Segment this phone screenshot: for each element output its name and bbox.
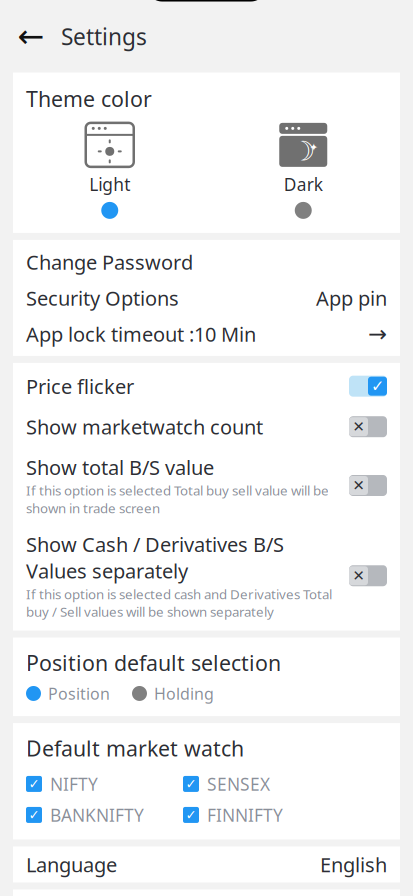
staticText: ✦	[309, 141, 318, 153]
button[interactable]: ✓	[26, 803, 183, 826]
staticText: If this option is selected cash and Deri…	[26, 585, 332, 620]
button[interactable]: ✓	[183, 772, 340, 795]
button[interactable]: Price flicker	[13, 366, 400, 406]
staticText: Show Cash / Derivatives B/S Values separ…	[26, 531, 284, 584]
staticText: ✕	[352, 477, 364, 494]
staticText: ✕	[352, 567, 364, 584]
staticText: Theme color	[26, 84, 152, 113]
button[interactable]: Position	[26, 683, 110, 704]
staticText: ✓	[371, 377, 384, 395]
staticText: NIFTY	[50, 772, 98, 795]
staticText: Light	[89, 173, 130, 196]
staticText: ✓	[185, 776, 196, 791]
staticText: Position default selection	[26, 648, 281, 677]
staticText: SENSEX	[207, 772, 270, 795]
button[interactable]: Security Options	[13, 280, 400, 316]
staticText: Change Password	[26, 249, 193, 275]
button[interactable]: ✓	[26, 772, 183, 795]
staticText: Show marketwatch count	[26, 413, 263, 440]
staticText: If this option is selected Total buy sel…	[26, 482, 329, 517]
button[interactable]: Show marketwatch count	[13, 406, 400, 447]
staticText: ☽	[291, 136, 315, 166]
button[interactable]: Show Cash / Derivatives B/S Values separ…	[13, 524, 400, 627]
staticText: →	[368, 321, 387, 347]
button[interactable]: ✓	[183, 803, 340, 826]
staticText: Price flicker	[26, 373, 134, 399]
button[interactable]: Language	[13, 846, 400, 882]
staticText: Position	[48, 683, 110, 704]
staticText: App pin	[316, 285, 387, 311]
staticText: ←	[17, 18, 44, 55]
button[interactable]: Light	[13, 123, 206, 219]
button[interactable]: Holding	[132, 683, 214, 704]
staticText: Dark	[284, 173, 323, 196]
button[interactable]: Show total B/S value	[13, 447, 400, 524]
staticText: Language	[26, 851, 117, 878]
staticText: English	[320, 851, 387, 878]
staticText: App lock timeout :10 Min	[26, 321, 256, 347]
staticText: ✓	[28, 807, 39, 822]
staticText: ✓	[185, 807, 196, 822]
staticText: Show total B/S value	[26, 454, 214, 481]
button[interactable]: Back	[9, 16, 53, 56]
staticText: FINNIFTY	[207, 803, 283, 826]
staticText: ✓	[28, 776, 39, 791]
staticText: Holding	[154, 683, 214, 704]
button[interactable]: Change Password	[13, 244, 400, 280]
button[interactable]: App lock timeout :10 Min	[13, 316, 400, 352]
staticText: BANKNIFTY	[50, 803, 144, 826]
staticText: ✕	[352, 418, 364, 435]
button[interactable]: ☽	[206, 123, 400, 219]
staticText: Security Options	[26, 285, 179, 311]
staticText: Default market watch	[26, 734, 244, 762]
staticText: Settings	[61, 21, 147, 52]
